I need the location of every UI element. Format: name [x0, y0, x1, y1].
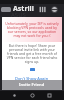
- staticText: Unfortunately, your ISP is actively bloc…: [5, 21, 59, 38]
- staticText: Don't Show Again: [15, 76, 49, 80]
- staticText: Invite Friend: [19, 82, 45, 88]
- button[interactable]: Copy invite link: [30, 68, 35, 71]
- button[interactable]: Back: [11, 92, 18, 99]
- button[interactable]: Recent apps: [46, 92, 53, 99]
- staticText: ASUS: [11, 11, 26, 19]
- button[interactable]: Invite Friend: [2, 80, 62, 90]
- button[interactable]: Select location: [51, 6, 58, 13]
- button[interactable]: Don't Show Again: [2, 76, 62, 80]
- button[interactable]: Home: [29, 92, 36, 99]
- staticText: But there is hope! Share your personal i…: [5, 43, 59, 64]
- button[interactable]: Connection speed: [39, 6, 46, 13]
- button[interactable]: VPN status: [1, 7, 11, 12]
- staticText: Astrill: [13, 4, 34, 14]
